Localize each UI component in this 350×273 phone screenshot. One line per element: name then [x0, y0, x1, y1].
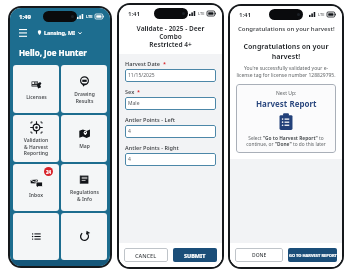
staticText: 1:49: [19, 13, 31, 21]
staticText: LTE: [86, 14, 93, 19]
staticText: Drawing Results: [74, 91, 95, 104]
staticText: 1:41: [239, 11, 251, 19]
button[interactable]: 4: [125, 125, 216, 138]
staticText: Validation & Harvest Reporting: [15, 137, 57, 156]
button[interactable]: 4: [125, 153, 216, 166]
staticText: *: [137, 88, 140, 95]
staticText: LTE: [198, 11, 205, 16]
button[interactable]: [61, 213, 107, 260]
staticText: Harvest Date: [125, 60, 161, 67]
button[interactable]: SUBMIT: [173, 248, 217, 262]
staticText: Licenses: [26, 94, 47, 101]
staticText: Harvest Report: [256, 98, 317, 109]
staticText: Validate - 2025 - Deer Combo Restricted …: [126, 24, 215, 49]
staticText: GO TO HARVEST REPORT: [289, 253, 337, 258]
staticText: 1:41: [128, 10, 140, 18]
staticText: Select "Go to Harvest Report" to continu…: [242, 135, 330, 147]
button[interactable]: Inbox: [13, 164, 59, 211]
staticText: LTE: [318, 12, 325, 17]
staticText: Sex: [125, 88, 135, 95]
staticText: Next Up:: [276, 90, 297, 97]
button[interactable]: Male: [125, 97, 216, 110]
staticText: DONE: [252, 252, 267, 259]
staticText: You're successfully validated your e-lic…: [236, 65, 336, 79]
button[interactable]: Map: [61, 115, 107, 162]
staticText: Map: [79, 143, 90, 150]
staticText: Congratulations on your harvest!: [238, 25, 335, 33]
staticText: Male: [128, 100, 140, 107]
staticText: Congratulations on your harvest!: [236, 42, 336, 62]
staticText: Antler Points - Right: [125, 144, 179, 151]
button[interactable]: Regulations & Info: [61, 164, 107, 211]
button[interactable]: DONE: [235, 248, 283, 262]
staticText: *: [163, 60, 166, 67]
button[interactable]: Licenses: [13, 65, 59, 113]
staticText: CANCEL: [135, 252, 157, 259]
staticText: 11/15/2025: [128, 72, 155, 79]
button[interactable]: 11/15/2025: [125, 69, 216, 82]
staticText: Antler Points - Left: [125, 116, 175, 123]
staticText: Hello, Joe Hunter: [19, 47, 87, 58]
button[interactable]: [13, 213, 59, 260]
button[interactable]: GO TO HARVEST REPORT: [288, 248, 337, 262]
staticText: Lansing, MI: [44, 29, 76, 36]
staticText: 4: [128, 156, 131, 163]
staticText: 4: [128, 128, 131, 135]
button[interactable]: CANCEL: [124, 248, 168, 262]
button[interactable]: Lansing, MI: [35, 27, 84, 38]
button[interactable]: Validation & Harvest Reporting: [13, 115, 59, 162]
staticText: 24: [46, 169, 52, 175]
button[interactable]: Menu: [17, 26, 29, 38]
staticText: Inbox: [29, 192, 43, 199]
staticText: SUBMIT: [184, 252, 206, 259]
staticText: Regulations & Info: [70, 189, 99, 202]
button[interactable]: Drawing Results: [61, 65, 107, 113]
